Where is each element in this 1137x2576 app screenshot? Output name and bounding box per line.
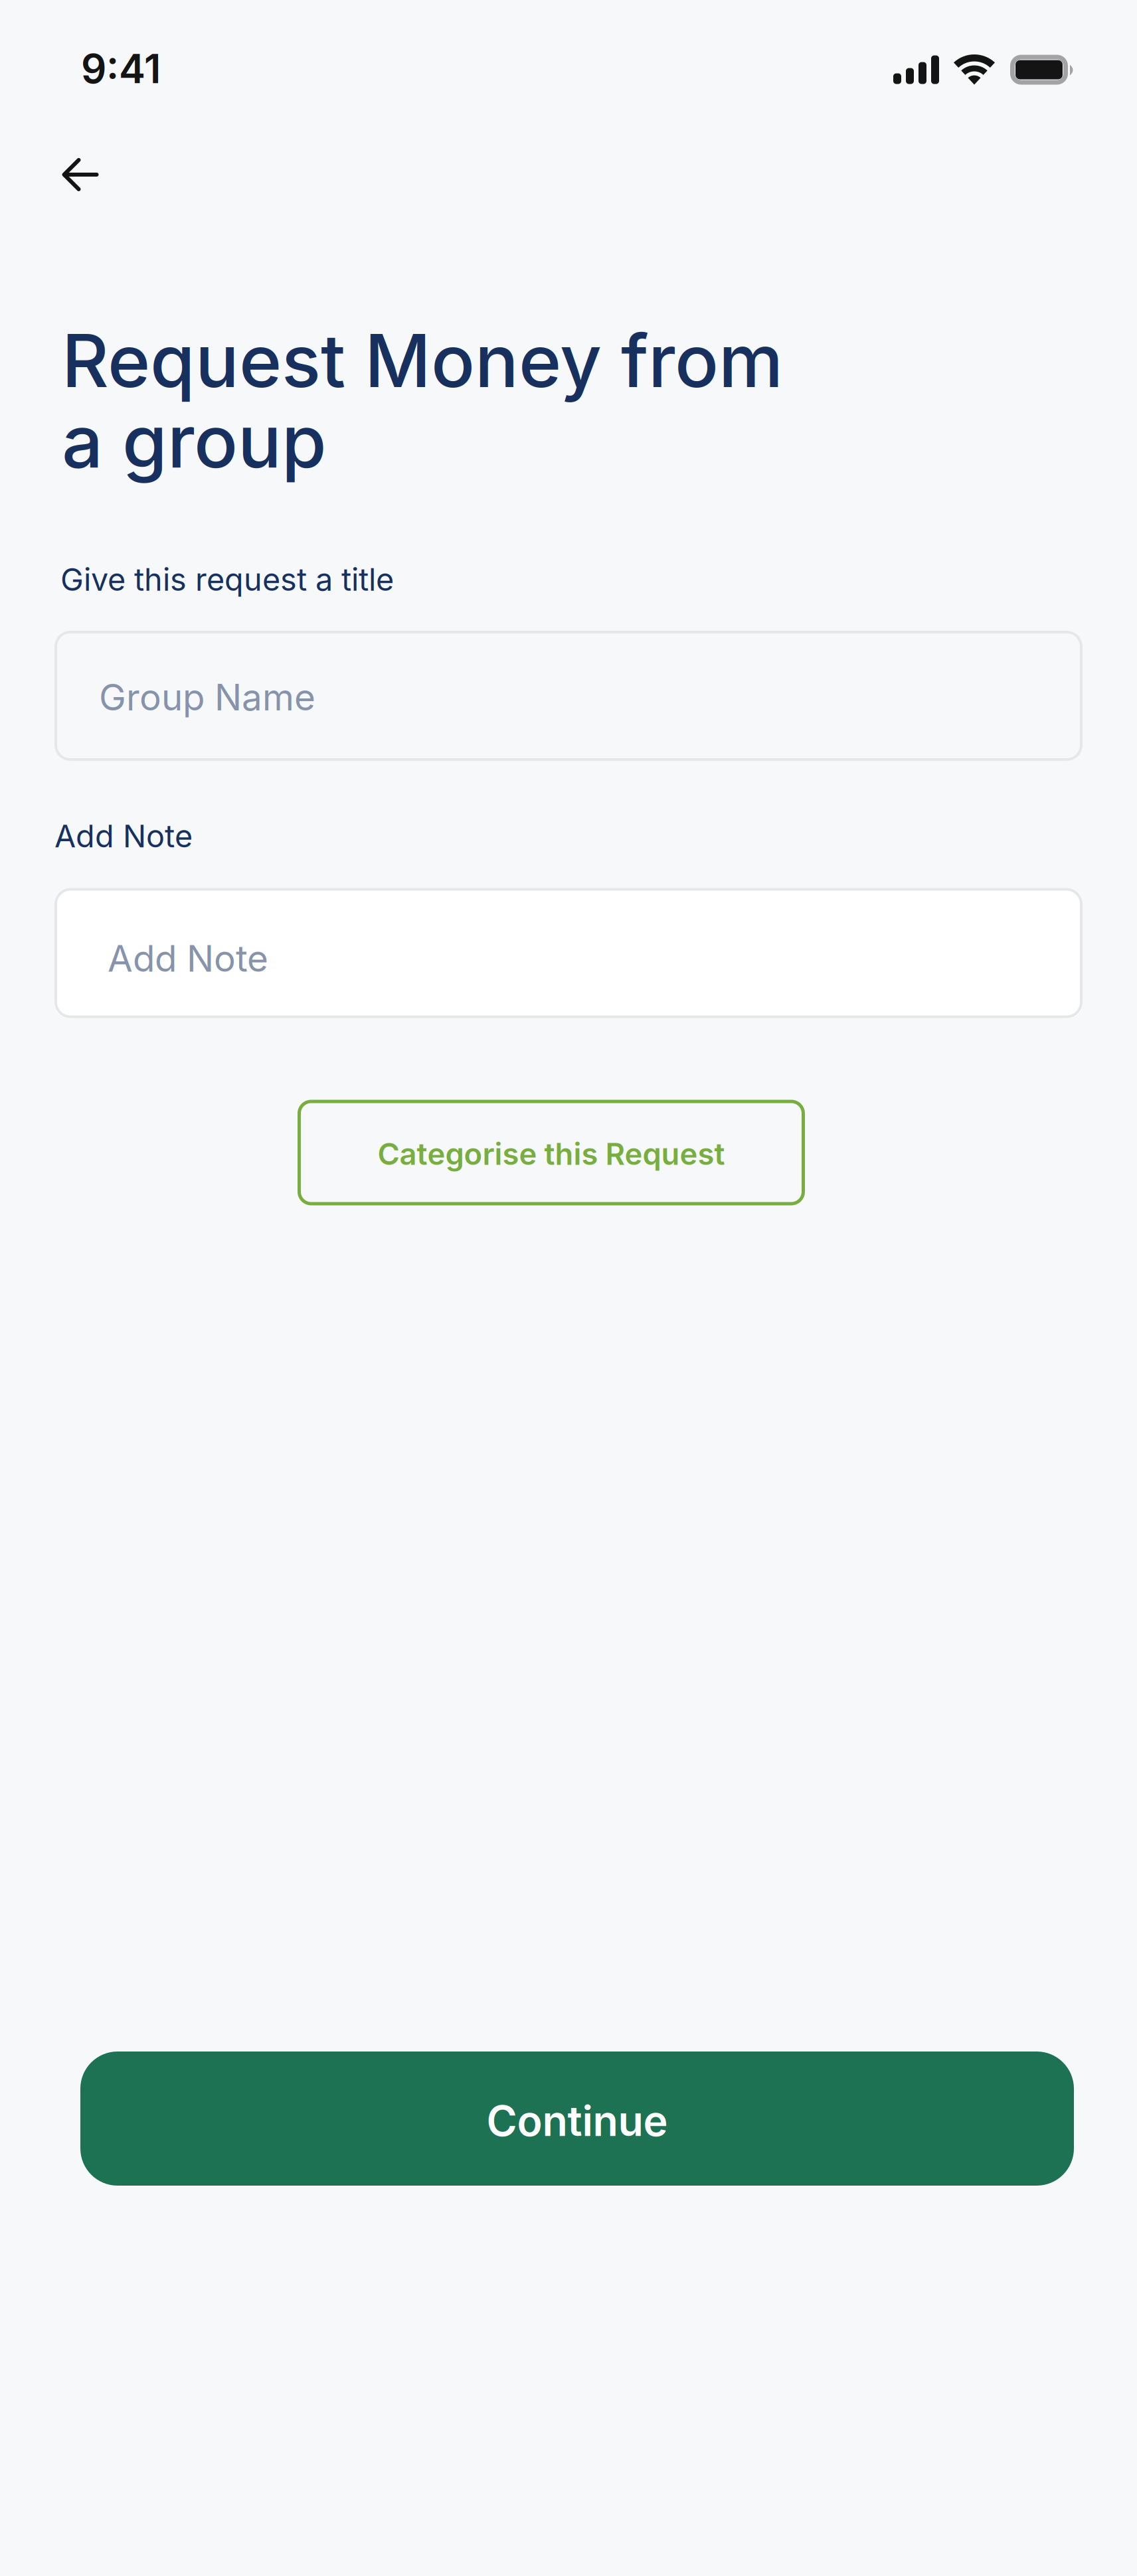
staticText: 9:41 xyxy=(81,45,161,93)
staticText: Add Note xyxy=(108,936,268,980)
button[interactable]: Back xyxy=(48,143,112,206)
staticText: Group Name xyxy=(99,675,315,719)
staticText: Categorise this Request xyxy=(378,1136,725,1172)
staticText: Add Note xyxy=(54,817,193,855)
button[interactable]: Continue xyxy=(80,2052,1074,2186)
button[interactable]: Categorise this Request xyxy=(298,1100,805,1205)
staticText: Request Money from a group xyxy=(62,317,783,485)
staticText: Continue xyxy=(486,2096,668,2146)
staticText: Give this request a title xyxy=(60,561,394,598)
